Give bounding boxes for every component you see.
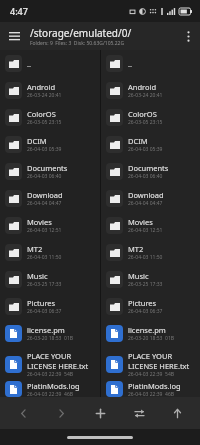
button[interactable]: Pictures	[0, 293, 100, 320]
staticText: 26-03-20 18:53 01B	[27, 335, 74, 342]
button[interactable]: Movies	[101, 212, 200, 239]
staticText: Pictures	[128, 298, 157, 308]
staticText: 26-04-04 04:47	[128, 200, 163, 207]
staticText: Pictures	[27, 298, 56, 308]
staticText: 26-04-03 22:39 54B	[128, 371, 175, 378]
staticText: 26-04-03 22:39 46B	[27, 391, 74, 397]
button[interactable]: ..	[101, 50, 200, 77]
staticText: 4:47	[10, 5, 28, 17]
staticText: Movies	[27, 217, 52, 227]
staticText: ColorOS	[27, 109, 56, 119]
staticText: DCIM	[27, 136, 47, 146]
staticText: 26-03-25 17:33	[27, 281, 62, 288]
button[interactable]: Transfer	[123, 397, 155, 429]
staticText: PLACE YOUR LICENSE HERE.txt	[128, 351, 197, 371]
staticText: 26-03-24 20:41	[128, 92, 163, 99]
button[interactable]: Download	[101, 185, 200, 212]
staticText: PlatinMods.log	[27, 381, 80, 391]
staticText: Documents	[128, 163, 169, 173]
button[interactable]: Music	[0, 266, 100, 293]
staticText: license.pm	[128, 325, 166, 335]
staticText: DCIM	[128, 136, 148, 146]
button[interactable]: MT2	[101, 239, 200, 266]
button[interactable]: PlatinMods.log	[0, 381, 100, 397]
button[interactable]: Pictures	[101, 293, 200, 320]
staticText: 26-03-20 18:53 01B	[128, 335, 175, 342]
button[interactable]: Back	[7, 397, 39, 429]
button[interactable]: license.pm	[101, 320, 200, 347]
staticText: 26-04-03 11:50	[128, 254, 163, 261]
staticText: Documents	[27, 163, 68, 173]
staticText: 26-03-05 23:15	[27, 119, 62, 126]
button[interactable]: Add	[84, 397, 116, 429]
staticText: /storage/emulated/0/	[30, 26, 132, 40]
button[interactable]: Movies	[0, 212, 100, 239]
staticText: 26-04-03 22:39 46B	[128, 391, 175, 397]
staticText: Download	[128, 190, 164, 200]
button[interactable]: Open navigation drawer	[0, 22, 28, 50]
staticText: 26-03-05 23:15	[128, 119, 163, 126]
button[interactable]: license.pm	[0, 320, 100, 347]
button[interactable]: PlatinMods.log	[101, 381, 200, 397]
button[interactable]: PLACE YOUR LICENSE HERE.txt	[0, 347, 100, 381]
staticText: PlatinMods.log	[128, 381, 181, 391]
staticText: license.pm	[27, 325, 65, 335]
button[interactable]: ColorOS	[0, 104, 100, 131]
button[interactable]: Music	[101, 266, 200, 293]
button[interactable]: More options	[176, 24, 200, 48]
staticText: 26-03-24 20:41	[27, 92, 62, 99]
button[interactable]: DCIM	[0, 131, 100, 158]
button[interactable]: Documents	[101, 158, 200, 185]
staticText: Download	[27, 190, 63, 200]
button[interactable]: DCIM	[101, 131, 200, 158]
staticText: PLACE YOUR LICENSE HERE.txt	[27, 351, 97, 371]
button[interactable]: Android	[0, 77, 100, 104]
staticText: 26-04-03 06:40	[128, 173, 163, 180]
button[interactable]: PLACE YOUR LICENSE HERE.txt	[101, 347, 200, 381]
button[interactable]: Forward	[45, 397, 77, 429]
button[interactable]: Up	[161, 397, 193, 429]
staticText: 26-04-03 12:51	[27, 227, 62, 234]
staticText: Folders: 9 Files: 3 Disk: 50.63G/105.22G	[30, 40, 125, 47]
button[interactable]: Android	[101, 77, 200, 104]
staticText: 26-04-03 06:40	[27, 173, 62, 180]
staticText: Movies	[128, 217, 153, 227]
staticText: 26-04-04 04:47	[27, 200, 62, 207]
staticText: 26-04-03 06:37	[27, 308, 62, 315]
button[interactable]: ..	[0, 50, 100, 77]
staticText: 26-04-03 05:39	[128, 146, 163, 153]
button[interactable]: MT2	[0, 239, 100, 266]
staticText: Android	[128, 82, 157, 92]
staticText: 26-03-25 17:33	[128, 281, 163, 288]
staticText: 26-04-03 05:39	[27, 146, 62, 153]
staticText: 26-04-03 12:51	[128, 227, 163, 234]
staticText: MT2	[27, 244, 43, 254]
staticText: ..	[128, 59, 133, 69]
button[interactable]: Documents	[0, 158, 100, 185]
staticText: MT2	[128, 244, 144, 254]
staticText: 26-04-03 06:37	[128, 308, 163, 315]
staticText: Android	[27, 82, 56, 92]
staticText: Music	[128, 271, 149, 281]
staticText: ..	[27, 59, 32, 69]
button[interactable]: Download	[0, 185, 100, 212]
staticText: ColorOS	[128, 109, 157, 119]
button[interactable]: ColorOS	[101, 104, 200, 131]
staticText: 26-04-03 22:39 54B	[27, 371, 74, 378]
staticText: 26-04-03 11:50	[27, 254, 62, 261]
staticText: Music	[27, 271, 48, 281]
